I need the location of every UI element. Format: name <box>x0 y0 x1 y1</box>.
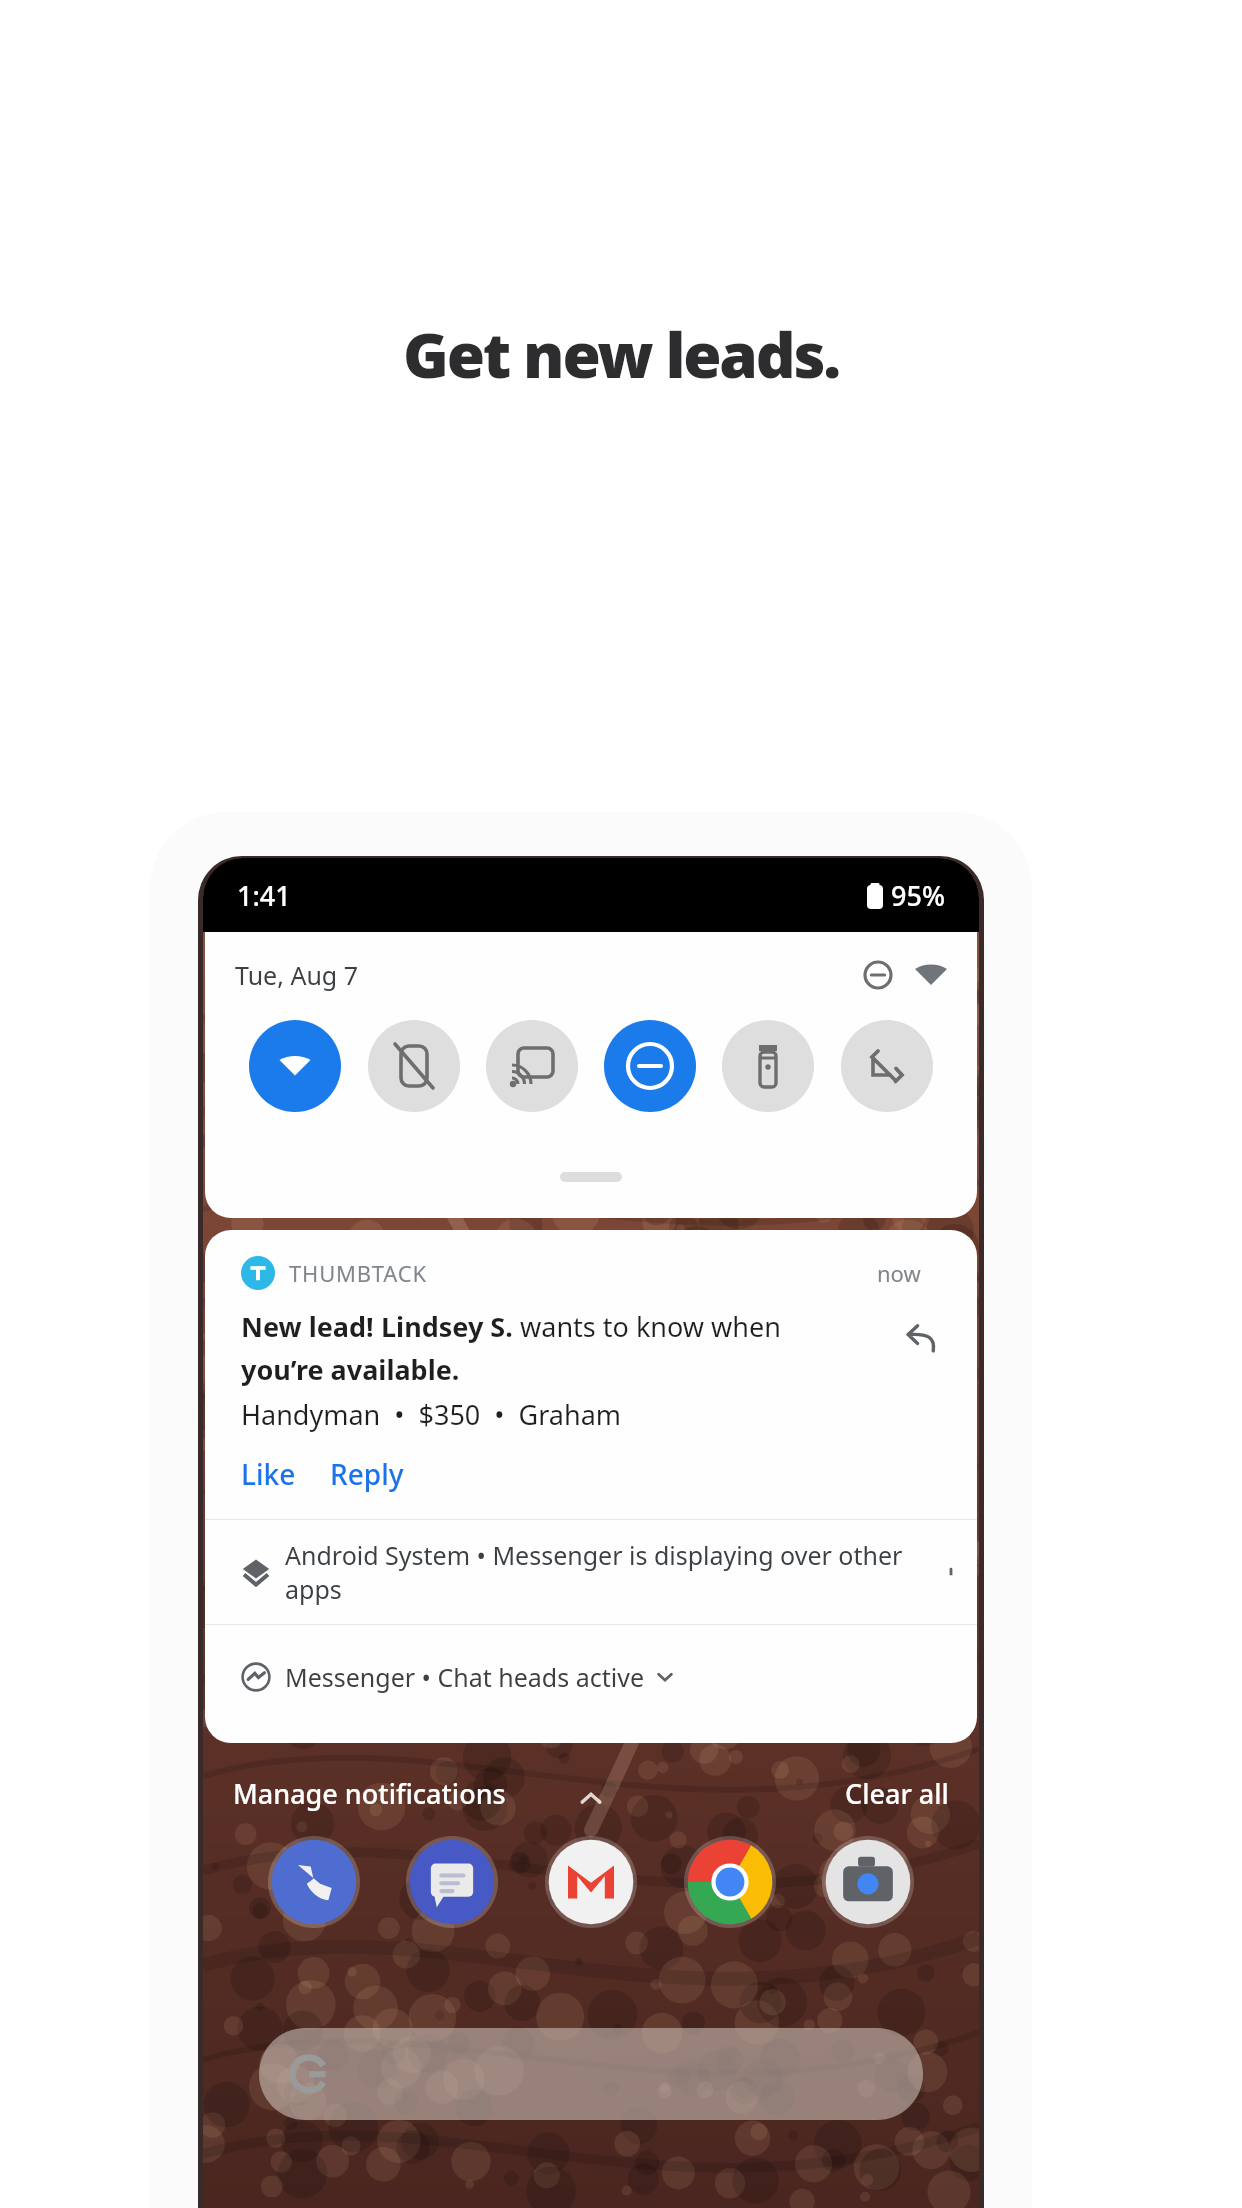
button[interactable]: Android System • Messenger is displaying… <box>205 1520 977 1624</box>
other: Wi-Fi <box>915 959 947 991</box>
staticText: Get new leads. <box>403 312 839 396</box>
staticText: Handyman • $350 • Graham <box>241 1396 622 1433</box>
staticText: Tue, Aug 7 <box>235 958 359 992</box>
staticText: Android System • Messenger is displaying… <box>285 1538 951 1606</box>
staticText: Lindsey S. <box>381 1308 513 1345</box>
staticText: 1:41 <box>237 877 291 914</box>
button[interactable]: Phone <box>268 1836 360 1928</box>
staticText: Manage notifications <box>233 1775 506 1812</box>
button[interactable]: Messenger • Chat heads active <box>205 1625 977 1729</box>
button[interactable]: Manage notifications <box>233 1775 506 1812</box>
button[interactable]: Messages <box>406 1836 498 1928</box>
staticText: Like <box>241 1455 296 1493</box>
button[interactable]: Auto rotate <box>841 1020 933 1112</box>
other: Do not disturb <box>863 960 893 990</box>
staticText: wants to know when <box>513 1308 781 1345</box>
button[interactable]: Google Search <box>259 2028 923 2120</box>
button[interactable]: Chrome <box>684 1836 776 1928</box>
staticText: Clear all <box>845 1775 949 1812</box>
button[interactable]: THUMBTACK <box>205 1230 977 1519</box>
button[interactable]: Play Store <box>266 1588 369 1724</box>
button[interactable]: Maps <box>413 1588 505 1724</box>
button[interactable]: Reply <box>330 1455 404 1493</box>
button[interactable]: Do not disturb <box>604 1020 696 1112</box>
staticText: THUMBTACK <box>289 1258 427 1288</box>
button[interactable]: Gmail <box>545 1836 637 1928</box>
button[interactable]: Cast screen <box>486 1020 578 1112</box>
staticText: you’re available. <box>241 1351 460 1388</box>
button[interactable]: Wi-Fi <box>249 1020 341 1112</box>
staticText: New lead! <box>241 1308 381 1345</box>
staticText: Messenger • Chat heads active <box>285 1660 645 1694</box>
button[interactable]: Reply <box>891 1308 951 1368</box>
button[interactable]: Like <box>241 1455 330 1493</box>
staticText: now <box>877 1258 921 1288</box>
staticText: 95% <box>891 877 945 914</box>
button[interactable]: News <box>550 1588 642 1724</box>
button[interactable]: Camera <box>822 1836 914 1928</box>
button[interactable]: Flashlight <box>722 1020 814 1112</box>
button[interactable]: Clear all <box>845 1775 949 1812</box>
staticText: Reply <box>330 1455 404 1493</box>
button[interactable]: Mobile data off <box>368 1020 460 1112</box>
